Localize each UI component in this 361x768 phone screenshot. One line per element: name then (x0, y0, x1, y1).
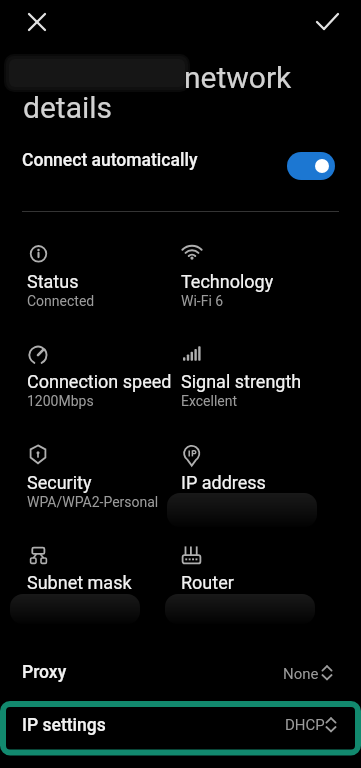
button[interactable]: IP address (181, 445, 331, 543)
button[interactable]: Security (27, 445, 177, 543)
staticText: details (23, 90, 113, 125)
staticText: network (184, 60, 292, 95)
staticText: IP address (181, 472, 266, 493)
staticText: Status (27, 271, 79, 292)
button[interactable]: Proxy (0, 648, 361, 702)
button[interactable]: Connection speed (27, 344, 177, 442)
staticText: Wi-Fi 6 (181, 293, 224, 309)
staticText: Proxy (22, 662, 67, 683)
staticText: Connection speed (27, 371, 172, 392)
staticText: DHCP (285, 716, 325, 734)
staticText: Router (181, 572, 234, 593)
button[interactable]: Status (27, 244, 177, 342)
staticText: Subnet mask (27, 572, 132, 593)
staticText: Excellent (181, 393, 238, 409)
staticText: Security (27, 472, 92, 493)
staticText: IP settings (22, 715, 106, 736)
button[interactable] (21, 6, 53, 38)
button[interactable]: Technology (181, 244, 331, 342)
button[interactable]: Subnet mask (27, 545, 177, 643)
button[interactable]: Signal strength (181, 344, 331, 442)
button[interactable]: IP settings (0, 702, 361, 754)
staticText: Connected (27, 293, 95, 309)
staticText: Technology (181, 271, 274, 292)
staticText: WPA/WPA2-Personal (27, 494, 159, 510)
staticText: 1200Mbps (27, 393, 94, 409)
staticText: Connect automatically (22, 150, 198, 171)
staticText: Signal strength (181, 371, 302, 392)
button[interactable]: Connect automatically (0, 140, 361, 194)
button[interactable] (312, 5, 344, 37)
button[interactable]: Router (181, 545, 331, 643)
staticText: None (283, 665, 319, 683)
